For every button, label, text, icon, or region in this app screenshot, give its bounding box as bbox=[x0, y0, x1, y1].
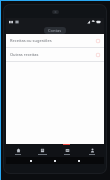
button[interactable]: Perfil bbox=[79, 144, 104, 157]
button[interactable]: Receitas ou sugestões bbox=[6, 34, 104, 47]
button[interactable]: Home bbox=[49, 157, 61, 164]
button[interactable]: Outras receitas bbox=[6, 48, 104, 61]
button[interactable]: Início bbox=[6, 144, 30, 157]
staticText: Outras receitas bbox=[10, 52, 96, 57]
button[interactable]: Contas bbox=[44, 27, 66, 34]
staticText: Contas bbox=[48, 28, 62, 33]
button[interactable]: Contas bbox=[54, 144, 79, 157]
staticText: Receitas ou sugestões bbox=[10, 38, 96, 43]
button[interactable]: Recent apps bbox=[73, 157, 85, 164]
button[interactable]: Back bbox=[25, 157, 37, 164]
button[interactable]: Extrato bbox=[30, 144, 54, 157]
